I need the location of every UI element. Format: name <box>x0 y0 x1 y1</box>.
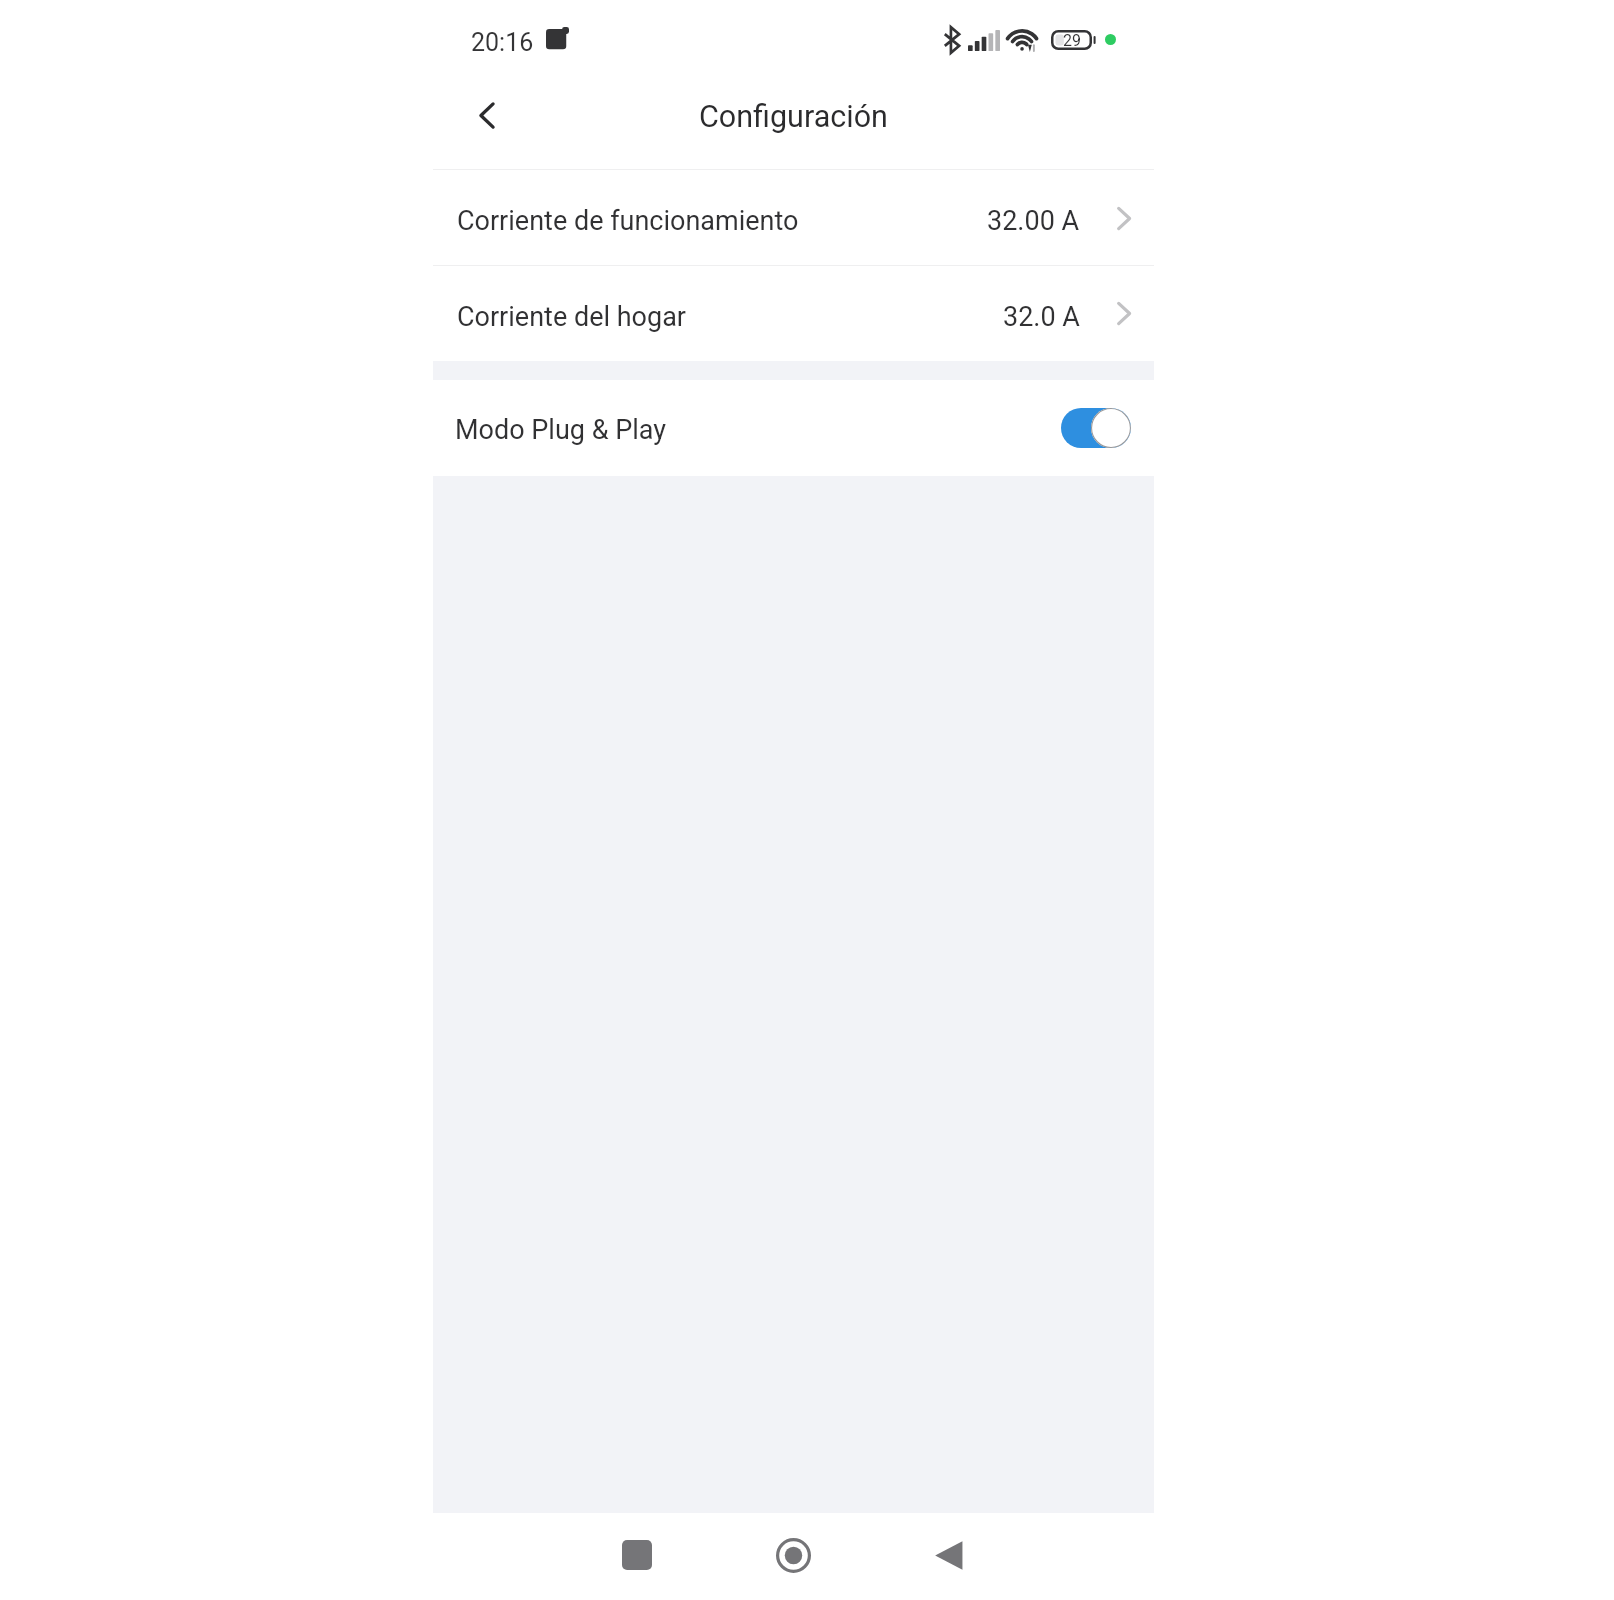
button[interactable]: Home <box>763 1525 823 1585</box>
button[interactable]: Back <box>918 1525 978 1585</box>
staticText: Corriente del hogar <box>457 301 686 333</box>
button[interactable]: Modo Plug & Play <box>1061 408 1131 448</box>
button[interactable]: Corriente del hogar <box>433 266 1154 361</box>
staticText: 32.0 A <box>1003 301 1080 333</box>
staticText: Configuración <box>699 99 888 135</box>
staticText: Corriente de funcionamiento <box>457 205 799 237</box>
staticText: Modo Plug & Play <box>455 414 666 446</box>
button[interactable]: Recents <box>607 1525 667 1585</box>
staticText: 20:16 <box>471 28 534 56</box>
button[interactable]: Back <box>459 87 515 143</box>
staticText: 32.00 A <box>987 205 1080 237</box>
button[interactable]: Modo Plug & Play <box>433 380 1154 476</box>
staticText: 29 <box>1063 31 1081 50</box>
button[interactable]: Corriente de funcionamiento <box>433 170 1154 266</box>
